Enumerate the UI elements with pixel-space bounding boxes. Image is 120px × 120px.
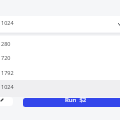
button[interactable] <box>0 65 120 80</box>
staticText: 720 <box>1 54 11 61</box>
button[interactable]: Run $2 <box>23 98 120 107</box>
button[interactable] <box>0 80 120 97</box>
button[interactable] <box>0 51 120 66</box>
button[interactable]: Add attachment <box>0 97 13 106</box>
staticText: 280 <box>1 40 11 47</box>
staticText: Run $2 <box>65 98 87 104</box>
button[interactable]: 1024 <box>0 16 120 32</box>
staticText: 1024 <box>1 19 14 26</box>
button[interactable] <box>0 36 120 51</box>
staticText: 1024 <box>1 83 14 90</box>
staticText: 1792 <box>1 69 14 76</box>
other: Open dropdown <box>118 23 120 26</box>
